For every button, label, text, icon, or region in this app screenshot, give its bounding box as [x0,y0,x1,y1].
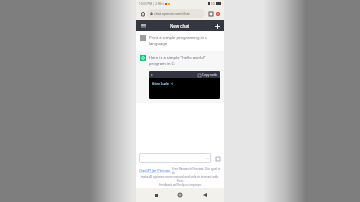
staticText: Print a simple programing in c language [149,35,220,47]
button[interactable]: Send message [214,155,221,162]
button[interactable]: Recent apps [151,190,161,200]
staticText: Here is a simple "hello world" program i… [149,55,220,67]
button[interactable]: Tabs [207,10,214,17]
staticText: chat.openai.com/chat [154,11,190,16]
staticText: feedback will help us improve. [159,183,202,187]
staticText: #include < [152,81,173,86]
staticText: make AI systems more natural and safe to… [139,175,221,183]
button[interactable]: Home [139,10,147,18]
button[interactable]: New chat [213,22,221,30]
staticText: Free Research Preview. Our goal is to [172,167,221,175]
staticText: 10:03 PM | 2.9K/s [139,2,164,6]
button[interactable]: Print a simple programing in c language [136,31,224,51]
button[interactable]: Home [175,190,185,200]
button[interactable]: Copy code [198,73,218,77]
staticText: New chat [170,23,190,29]
staticText: ... [206,156,209,160]
button[interactable]: More options [214,10,221,17]
button[interactable]: Here is a simple "hello world" program i… [136,51,224,103]
button[interactable]: Back [200,190,210,200]
staticText: 5G [211,2,215,6]
button[interactable]: ChatGPT Jan 9 Version. [139,169,171,173]
button[interactable]: chat.openai.com/chat [147,9,205,18]
staticText: Copy code [202,73,218,77]
staticText: c [151,73,153,77]
button[interactable]: ... [139,153,211,163]
button[interactable]: Open navigation menu [139,22,147,30]
